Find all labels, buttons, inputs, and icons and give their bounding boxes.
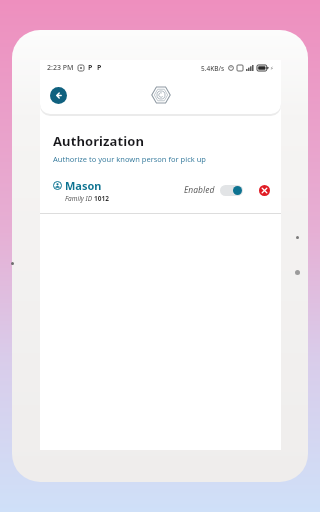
staticText: Family ID bbox=[65, 194, 94, 203]
staticText: 5.4KB/s bbox=[201, 64, 225, 73]
staticText: P bbox=[97, 63, 102, 73]
button[interactable]: Remove bbox=[259, 185, 270, 196]
staticText: Enabled bbox=[184, 184, 215, 196]
staticText: 2:23 PM bbox=[47, 63, 74, 73]
staticText: Mason bbox=[65, 178, 102, 193]
staticText: P bbox=[88, 63, 93, 73]
staticText: Authorization bbox=[53, 132, 144, 150]
button[interactable]: Back bbox=[50, 87, 67, 104]
staticText: ⚡ bbox=[270, 65, 274, 71]
button[interactable]: Mason bbox=[40, 175, 281, 205]
staticText: 1012 bbox=[94, 194, 109, 203]
staticText: Authorize to your known person for pick … bbox=[53, 154, 206, 164]
button[interactable]: Enabled bbox=[184, 184, 243, 196]
